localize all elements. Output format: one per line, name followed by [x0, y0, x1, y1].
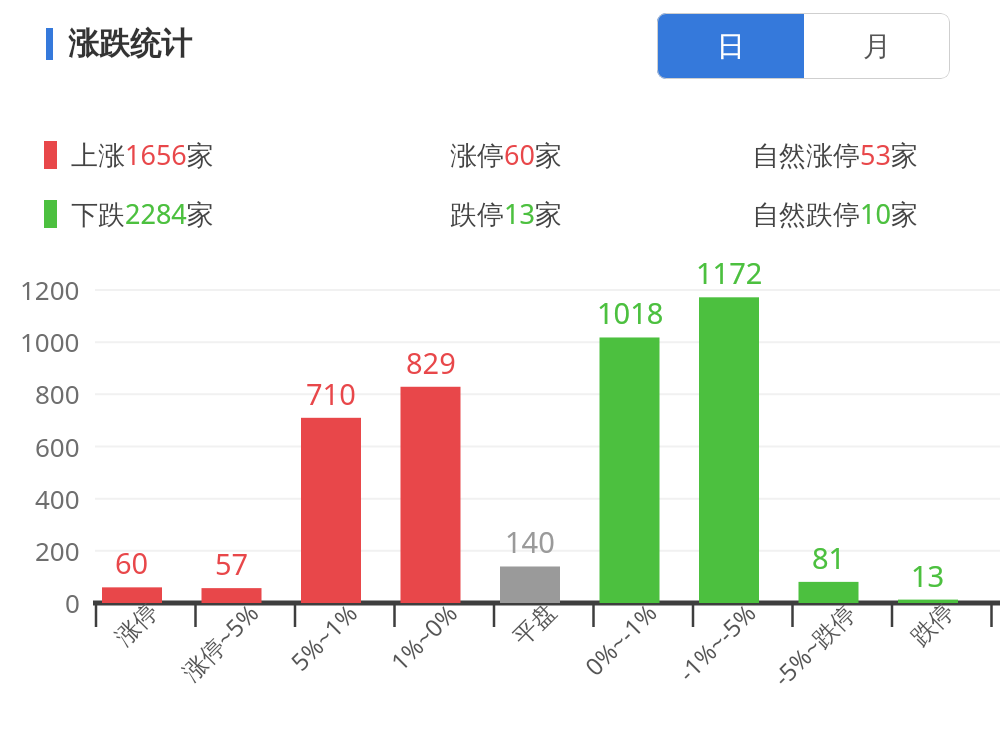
staticText: 自然跌停10家 [752, 195, 918, 232]
staticText: 5%~1% [283, 596, 364, 677]
staticText: -5%~跌停 [766, 596, 862, 693]
staticText: 自然涨停53家 [752, 136, 918, 173]
button[interactable]: 日 [657, 13, 804, 79]
staticText: -1%~-5% [671, 596, 762, 688]
staticText: 月 [863, 29, 891, 64]
staticText: 800 [35, 376, 80, 411]
staticText: 600 [35, 429, 80, 464]
staticText: 1200 [20, 272, 80, 307]
staticText: 上涨1656家 [71, 136, 214, 173]
staticText: 1000 [20, 324, 80, 359]
staticText: 13 [911, 556, 945, 595]
staticText: 57 [215, 544, 249, 583]
staticText: 下跌2284家 [71, 195, 214, 232]
staticText: 跌停13家 [450, 195, 562, 232]
staticText: 平盘 [507, 597, 562, 652]
staticText: 200 [35, 533, 80, 568]
staticText: 日 [717, 29, 745, 64]
staticText: 涨停60家 [450, 136, 562, 173]
staticText: 0%~-1% [577, 596, 664, 682]
staticText: 1%~0% [383, 596, 464, 677]
staticText: 涨跌统计 [68, 24, 192, 63]
staticText: 1018 [597, 293, 664, 332]
staticText: 涨停~5% [174, 596, 265, 687]
staticText: 710 [306, 374, 356, 413]
staticText: 400 [35, 481, 80, 516]
staticText: 1172 [696, 253, 763, 292]
staticText: 829 [406, 343, 456, 382]
button[interactable]: 月 [804, 13, 950, 79]
staticText: 60 [115, 543, 149, 582]
staticText: 81 [812, 538, 846, 577]
staticText: 跌停 [905, 597, 960, 652]
staticText: 140 [505, 522, 555, 561]
staticText: 0 [65, 585, 80, 620]
staticText: 涨停 [109, 597, 164, 652]
